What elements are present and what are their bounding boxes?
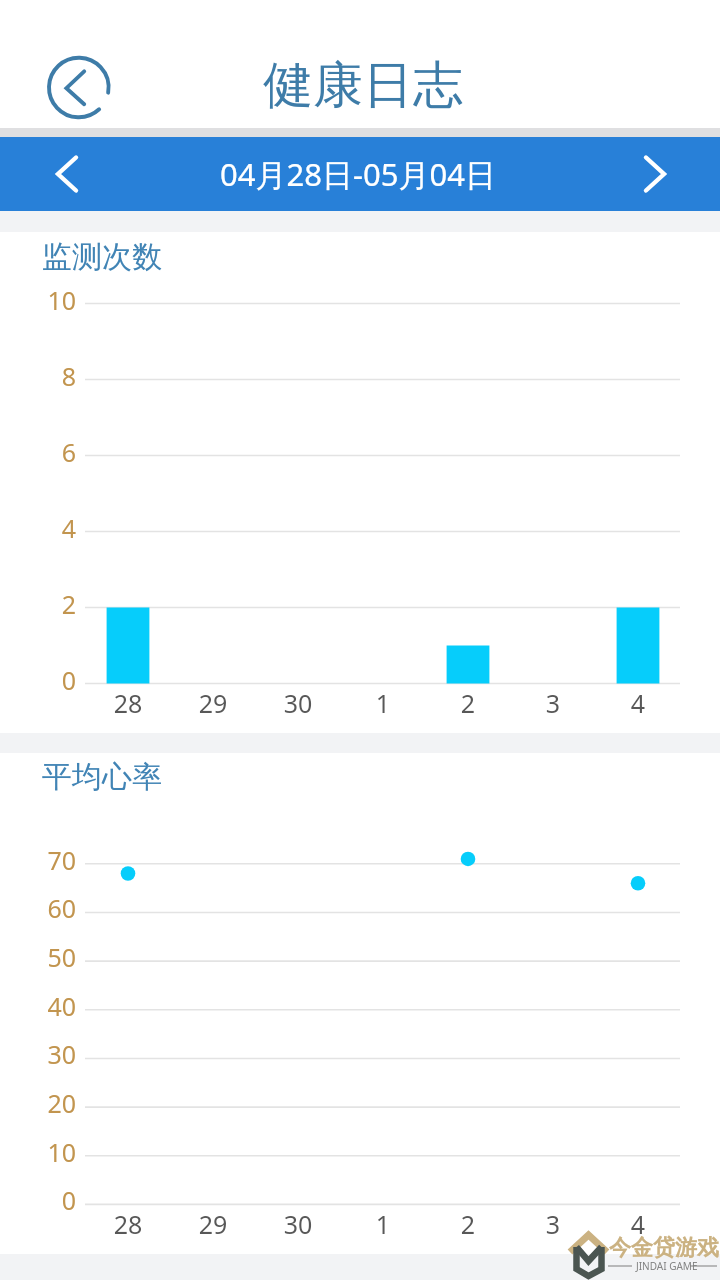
staticText: 3 [513,1207,593,1241]
staticText: 60 [0,891,76,925]
staticText: 04月28日-05月04日 [0,153,718,195]
staticText: 28 [88,686,168,720]
button[interactable]: Previous week [47,154,87,194]
staticText: 0 [0,1183,76,1217]
staticText: 平均心率 [42,758,162,796]
staticText: 30 [258,686,338,720]
staticText: 20 [0,1086,76,1120]
button[interactable]: Back [40,48,118,126]
staticText: 29 [173,686,253,720]
staticText: 1 [343,1207,423,1241]
staticText: 健康日志 [263,54,463,117]
staticText: 10 [0,283,76,317]
button[interactable]: 平均心率 chart [0,753,720,1254]
staticText: 今金贷游戏 [609,1234,719,1262]
staticText: 0 [0,663,76,697]
staticText: 50 [0,940,76,974]
staticText: 4 [0,511,76,545]
staticText: 2 [428,686,508,720]
staticText: 8 [0,359,76,393]
staticText: 6 [0,435,76,469]
button[interactable]: 监测次数 chart [0,232,720,733]
staticText: 1 [343,686,423,720]
staticText: 40 [0,989,76,1023]
staticText: 28 [88,1207,168,1241]
staticText: 3 [513,686,593,720]
staticText: 30 [258,1207,338,1241]
staticText: 4 [598,1207,678,1241]
staticText: 4 [598,686,678,720]
staticText: 2 [0,587,76,621]
staticText: 监测次数 [42,238,162,276]
staticText: 70 [0,843,76,877]
staticText: 10 [0,1135,76,1169]
staticText: 2 [428,1207,508,1241]
button[interactable]: Next week [635,154,675,194]
staticText: 30 [0,1037,76,1071]
staticText: 29 [173,1207,253,1241]
staticText: JINDAI GAME [636,1259,698,1273]
